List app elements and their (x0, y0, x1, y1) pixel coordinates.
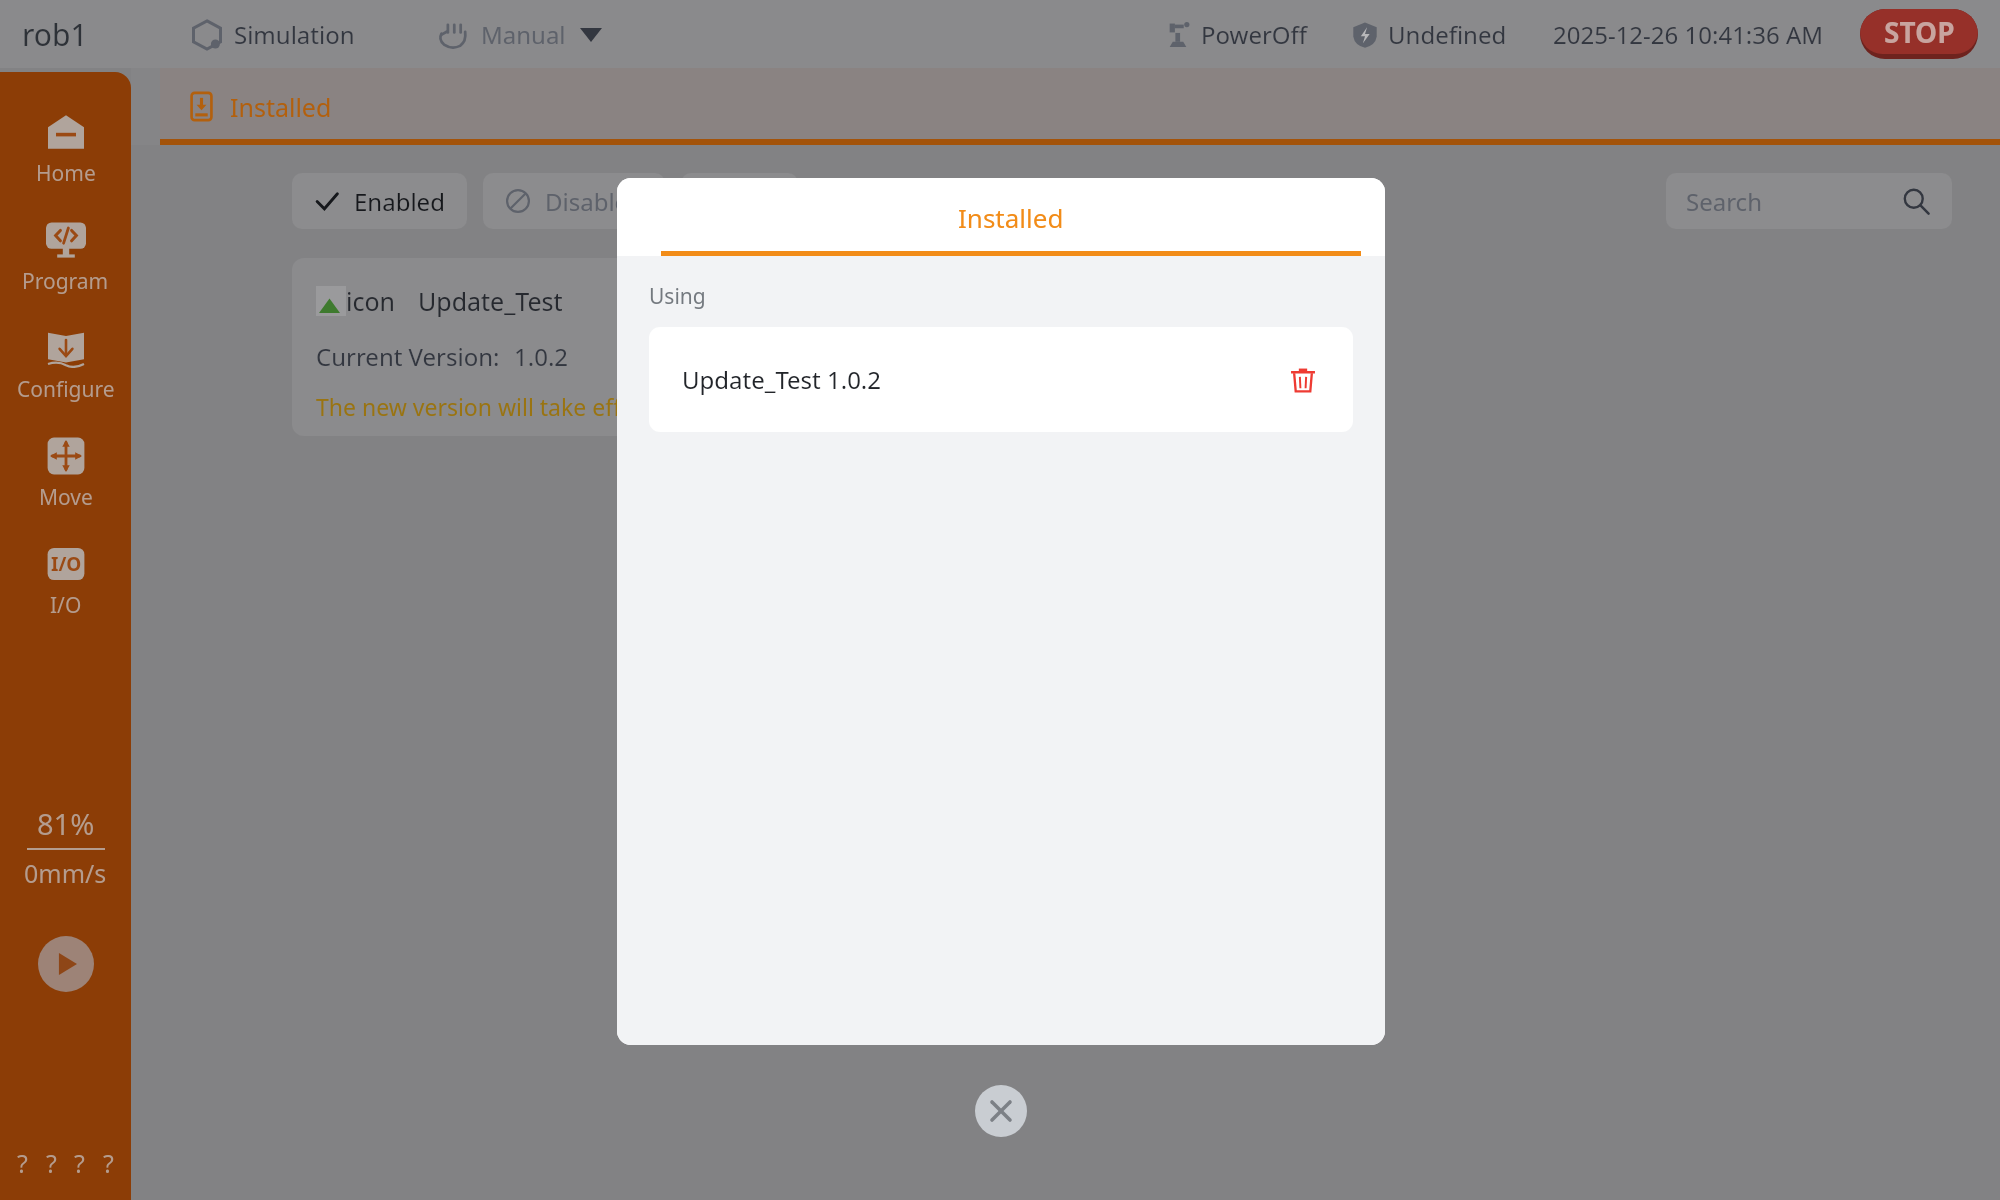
button[interactable]: Up (681, 173, 798, 229)
button[interactable]: Installed (637, 178, 1385, 256)
staticText: 0mm/s (24, 856, 107, 890)
button[interactable]: Help (17, 1146, 28, 1180)
button[interactable]: PowerOff (1165, 18, 1308, 51)
button[interactable]: STOP (1860, 9, 1978, 54)
staticText: Update_Test (418, 284, 563, 318)
staticText: Disabled (545, 185, 643, 218)
button[interactable]: Delete (1281, 358, 1325, 402)
staticText: Move (39, 483, 93, 512)
staticText: PowerOff (1201, 18, 1308, 51)
staticText: Using (649, 282, 706, 311)
button[interactable]: Close (975, 1085, 1027, 1137)
staticText: I/O (51, 551, 82, 577)
button[interactable]: icon (292, 258, 760, 436)
staticText: Undefined (1388, 18, 1507, 51)
staticText: 1.0.2 (514, 340, 569, 373)
staticText: Update_Test 1.0.2 (682, 363, 882, 396)
button[interactable]: Help (46, 1146, 57, 1180)
button[interactable]: Manual (437, 18, 602, 51)
staticText: ? (17, 1146, 28, 1180)
staticText: ? (103, 1146, 114, 1180)
staticText: Program (22, 267, 109, 296)
button[interactable]: Configure (0, 326, 131, 404)
staticText: The new version will take effect after r… (316, 391, 760, 422)
staticText: Configure (17, 375, 115, 404)
staticText: Installed (958, 200, 1064, 235)
staticText: Search (1686, 185, 1762, 218)
button[interactable]: Move (0, 434, 131, 512)
button[interactable]: Enabled (292, 173, 467, 229)
staticText: I/O (50, 591, 82, 620)
staticText: ? (46, 1146, 57, 1180)
button[interactable]: Search (1666, 173, 1952, 229)
button[interactable]: Update_Test 1.0.2 (649, 327, 1353, 432)
button[interactable]: Help (103, 1146, 114, 1180)
button[interactable]: Home (0, 110, 131, 188)
button[interactable]: Disabled (483, 173, 665, 229)
button[interactable]: Search (1902, 187, 1930, 215)
button[interactable]: Installed (160, 68, 2000, 145)
button[interactable]: I/O (0, 542, 131, 620)
staticText: STOP (1884, 13, 1955, 51)
button[interactable]: Simulation (192, 18, 355, 51)
staticText: Manual (481, 18, 566, 51)
staticText: 2025-12-26 10:41:36 AM (1553, 18, 1824, 51)
staticText: Current Version: (316, 340, 500, 373)
staticText: Simulation (234, 18, 355, 51)
staticText: ? (74, 1146, 85, 1180)
staticText: Home (36, 159, 96, 188)
button[interactable]: Undefined (1352, 18, 1507, 51)
button[interactable]: Program (0, 218, 131, 296)
staticText: icon (346, 284, 396, 318)
staticText: rob1 (22, 14, 88, 55)
staticText: Installed (230, 90, 332, 124)
staticText: Enabled (354, 185, 445, 218)
button[interactable]: Help (74, 1146, 85, 1180)
staticText: 81% (37, 804, 95, 843)
button[interactable]: Play (38, 936, 94, 992)
